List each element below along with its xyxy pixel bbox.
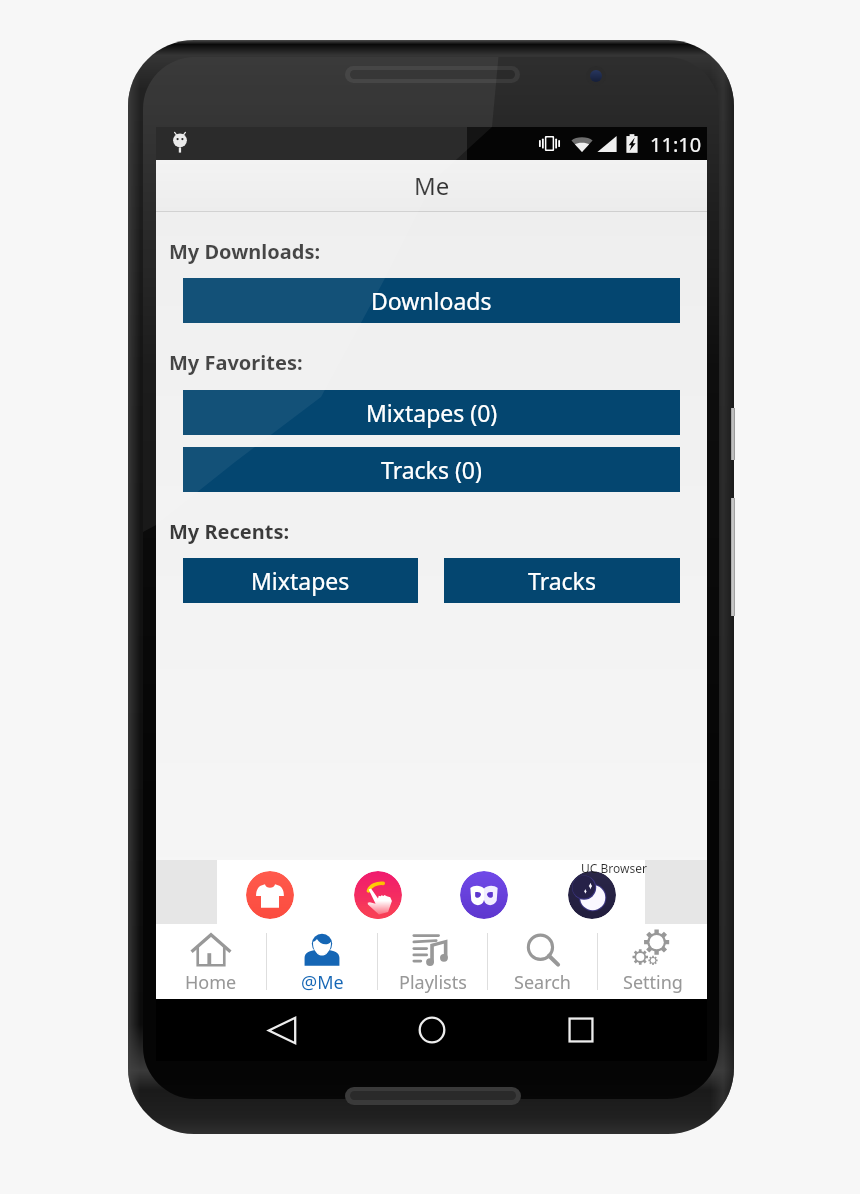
button[interactable]: Back [258,1006,306,1054]
staticText: Tracks (0) [381,454,482,485]
staticText: Tracks [528,565,596,596]
staticText: @Me [301,970,344,995]
staticText: 11:10 [650,131,702,158]
staticText: Downloads [371,285,492,316]
staticText: My Favorites: [169,349,303,376]
button[interactable]: Mixtapes [183,558,418,603]
button[interactable]: Masks app [460,871,508,919]
button[interactable]: Tracks (0) [183,447,680,492]
staticText: Mixtapes [251,565,350,596]
button[interactable]: Tracks [444,558,680,603]
staticText: Playlists [399,970,467,995]
staticText: My Recents: [169,518,290,545]
button[interactable]: Home [156,924,266,999]
button[interactable]: Downloads [183,278,680,323]
staticText: Mixtapes (0) [366,397,498,428]
button[interactable]: Recent apps [557,1006,605,1054]
staticText: Home [185,970,237,995]
button[interactable]: Games app [354,871,402,919]
button[interactable]: Home [408,1006,456,1054]
staticText: Search [514,970,571,995]
staticText: UC Browser [581,860,647,876]
button[interactable]: Playlists [378,924,487,999]
button[interactable]: Mixtapes (0) [183,390,680,435]
staticText: My Downloads: [169,238,321,265]
button[interactable]: Search [488,924,597,999]
staticText: Me [414,169,450,202]
button[interactable]: Setting [598,924,707,999]
button[interactable]: Shopping app [246,871,294,919]
button[interactable]: UC Browser [568,871,616,919]
staticText: Setting [623,970,683,995]
button[interactable]: @Me [267,924,377,999]
